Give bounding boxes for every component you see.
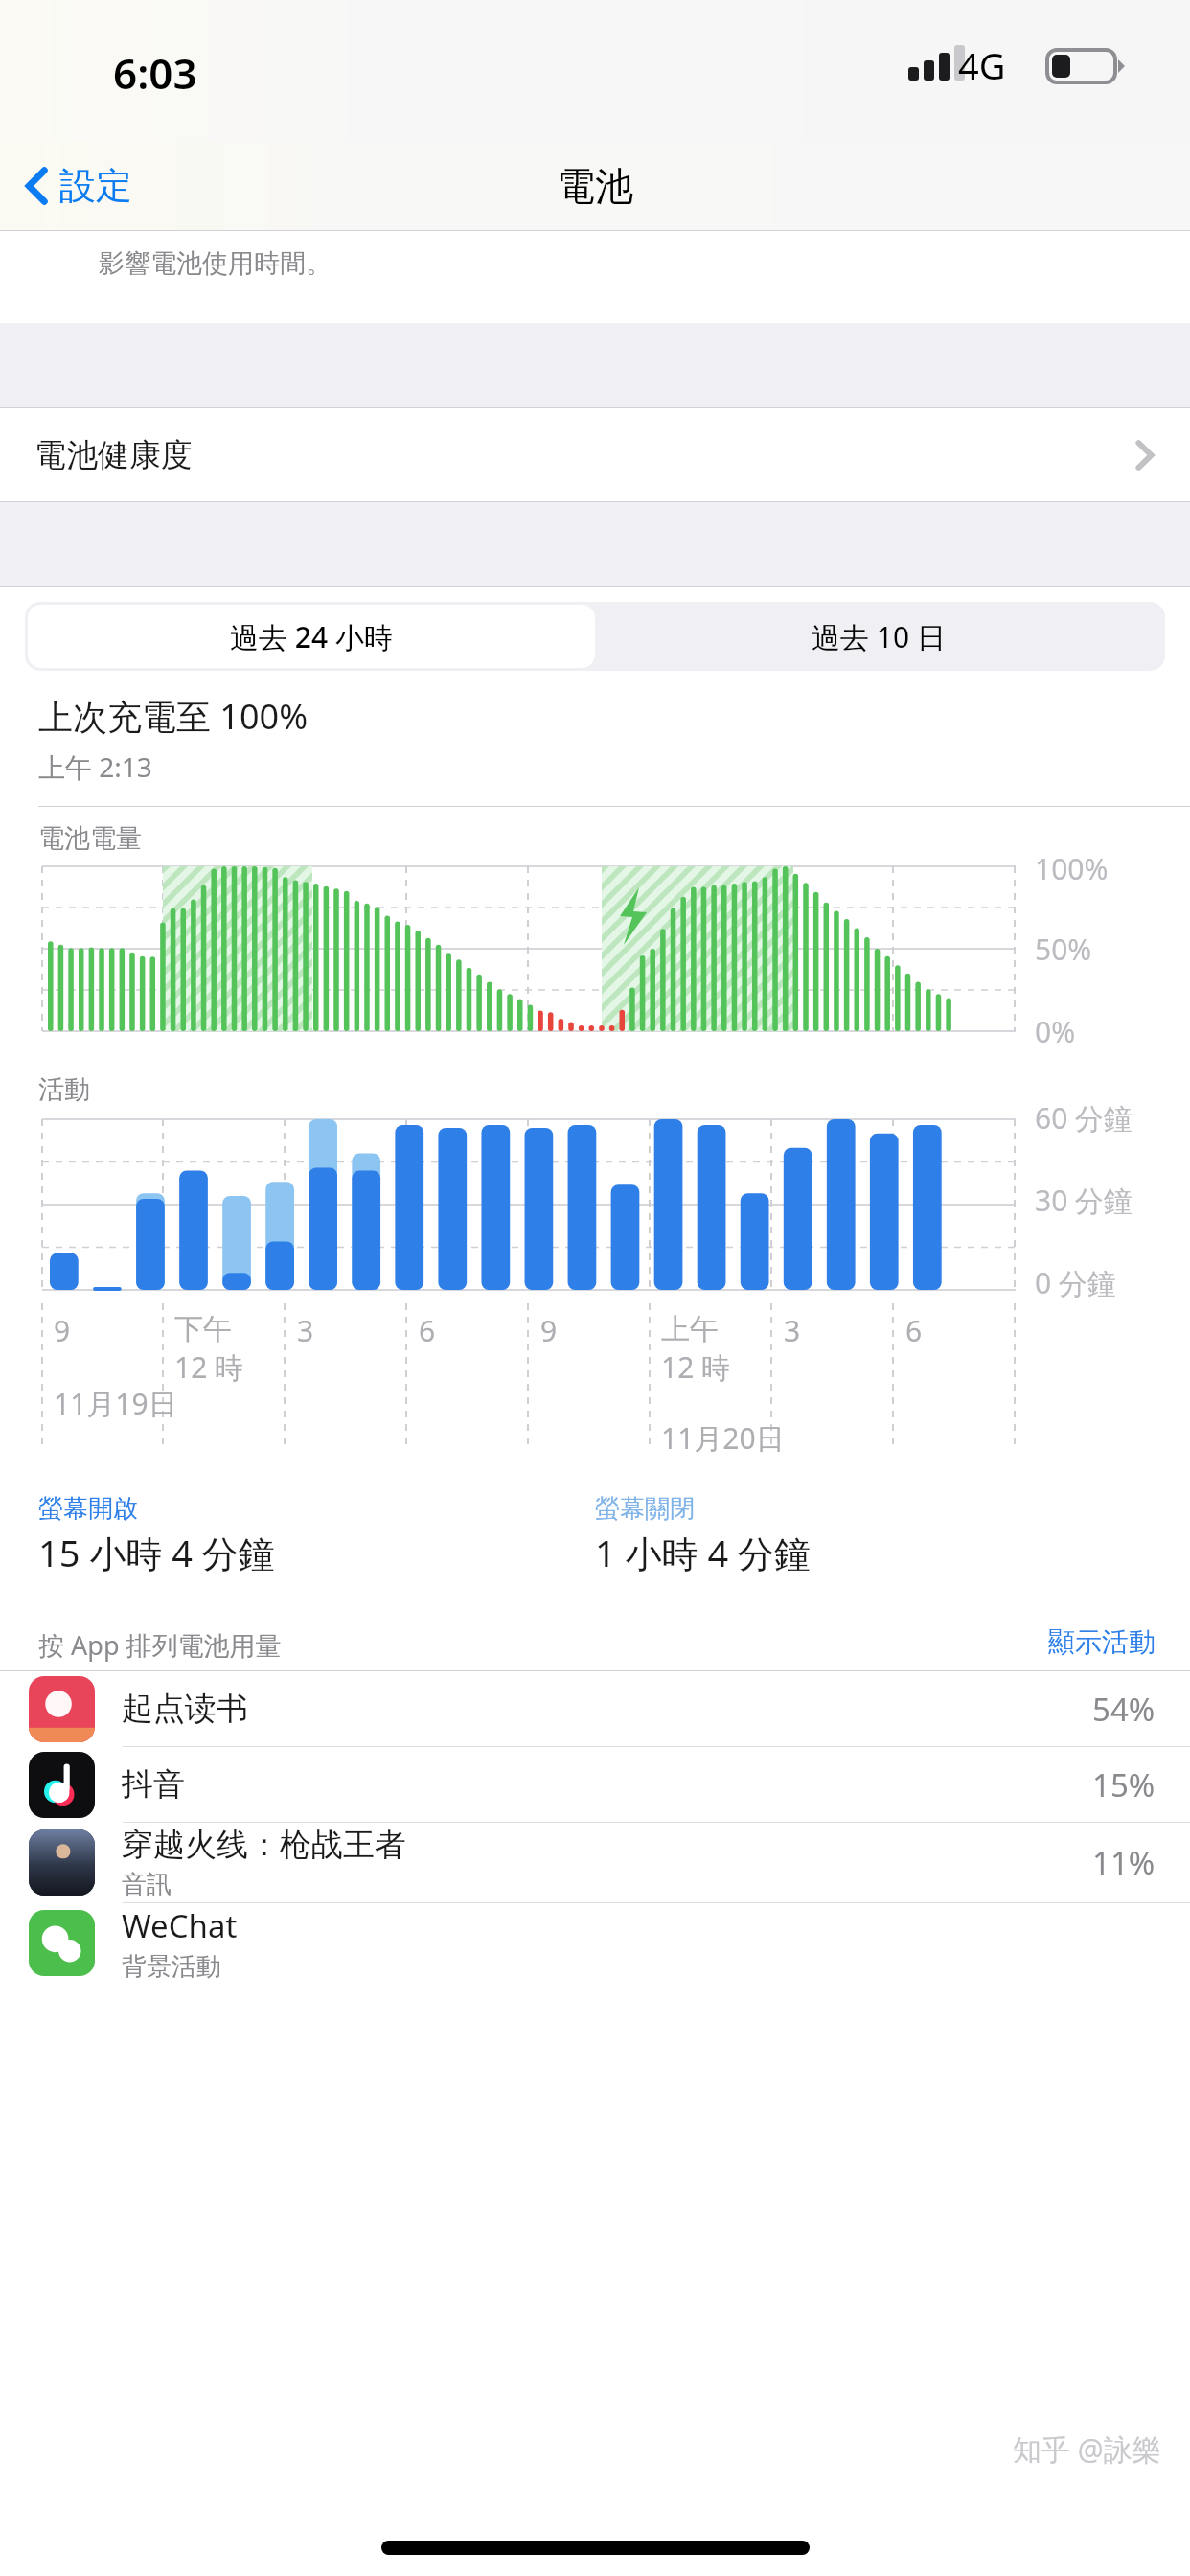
staticText: 50% [1035, 930, 1092, 969]
staticText: 下午 12 時 [174, 1311, 244, 1387]
staticText: 知乎 @詠樂 [1013, 2429, 1161, 2469]
staticText: 6 [419, 1311, 436, 1350]
staticText: 6 [905, 1311, 923, 1350]
staticText: 6:03 [113, 44, 197, 102]
staticText: 11% [1092, 1841, 1156, 1884]
button[interactable]: 電池健康度 [0, 408, 1190, 501]
staticText: 54% [1092, 1688, 1156, 1731]
staticText: 11月19日 [54, 1384, 177, 1423]
staticText: 活動 [38, 1073, 90, 1106]
button[interactable]: WeChat [0, 1903, 1190, 1983]
button[interactable]: 起点读书 [0, 1671, 1190, 1746]
staticText: 設定 [59, 163, 132, 209]
staticText: 上次充電至 100% [38, 693, 309, 740]
staticText: 抖音 [122, 1764, 185, 1805]
button[interactable]: 顯示活動 [1048, 1625, 1156, 1659]
staticText: 4G [958, 40, 1006, 90]
staticText: 電池健康度 [34, 435, 193, 475]
staticText: 11月20日 [661, 1418, 785, 1458]
staticText: 顯示活動 [1048, 1625, 1156, 1659]
staticText: 按 App 排列電池用量 [38, 1627, 282, 1663]
staticText: 15 小時 4 分鐘 [38, 1528, 275, 1577]
button[interactable]: 設定 [0, 157, 144, 215]
staticText: 上午 2:13 [38, 748, 152, 785]
staticText: 60 分鐘 [1035, 1098, 1133, 1138]
staticText: 過去 10 日 [812, 617, 946, 656]
staticText: 音訊 [122, 1869, 172, 1900]
other: Battery Health [1134, 437, 1156, 473]
staticText: 1 小時 4 分鐘 [595, 1528, 812, 1577]
staticText: 9 [54, 1311, 71, 1350]
staticText: 3 [297, 1311, 314, 1350]
button[interactable]: 抖音 [0, 1747, 1190, 1822]
staticText: WeChat [122, 1904, 238, 1947]
staticText: 影響電池使用時間。 [99, 247, 332, 280]
staticText: 起点读书 [122, 1689, 248, 1729]
staticText: 0 分鐘 [1035, 1263, 1116, 1302]
staticText: 上午 12 時 [661, 1311, 731, 1387]
staticText: 0% [1035, 1012, 1076, 1051]
staticText: 100% [1035, 849, 1109, 888]
staticText: 電池 [557, 162, 633, 210]
staticText: 30 分鐘 [1035, 1181, 1133, 1220]
staticText: 9 [540, 1311, 558, 1350]
staticText: 電池電量 [38, 822, 142, 855]
staticText: 螢幕關閉 [595, 1493, 695, 1525]
staticText: 螢幕開啟 [38, 1493, 138, 1525]
button[interactable]: 穿越火线：枪战王者 [0, 1823, 1190, 1902]
staticText: 背景活動 [122, 1951, 221, 1983]
staticText: 穿越火线：枪战王者 [122, 1825, 406, 1865]
staticText: 過去 24 小時 [230, 617, 393, 656]
button[interactable]: 過去 24 小時 [28, 605, 595, 668]
staticText: 15% [1092, 1763, 1156, 1806]
button[interactable]: 過去 10 日 [595, 605, 1162, 668]
staticText: 3 [784, 1311, 801, 1350]
